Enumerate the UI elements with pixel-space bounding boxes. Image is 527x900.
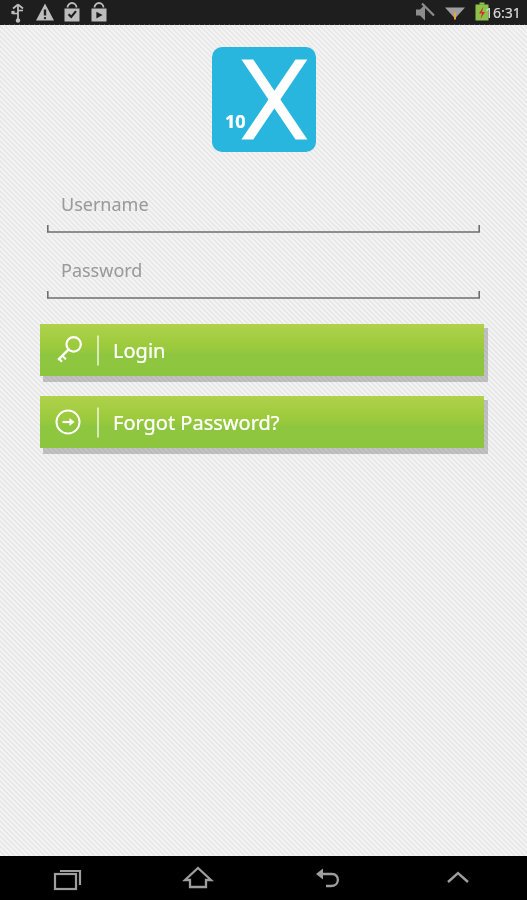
button[interactable]: Back xyxy=(300,856,356,900)
staticText: Forgot Password? xyxy=(113,409,280,436)
button[interactable]: Password xyxy=(47,256,480,301)
button[interactable]: Show menu xyxy=(430,856,486,900)
staticText: Login xyxy=(113,337,166,364)
staticText: 16:31 xyxy=(485,3,521,22)
button[interactable]: Forgot Password? xyxy=(40,396,487,452)
staticText: Password xyxy=(61,258,143,283)
button[interactable]: Username xyxy=(47,190,480,235)
staticText: Username xyxy=(61,192,149,217)
button[interactable]: Login xyxy=(40,324,487,380)
button[interactable]: Home xyxy=(170,856,226,900)
button[interactable]: Recent apps xyxy=(40,856,96,900)
staticText: 10 xyxy=(225,109,246,134)
